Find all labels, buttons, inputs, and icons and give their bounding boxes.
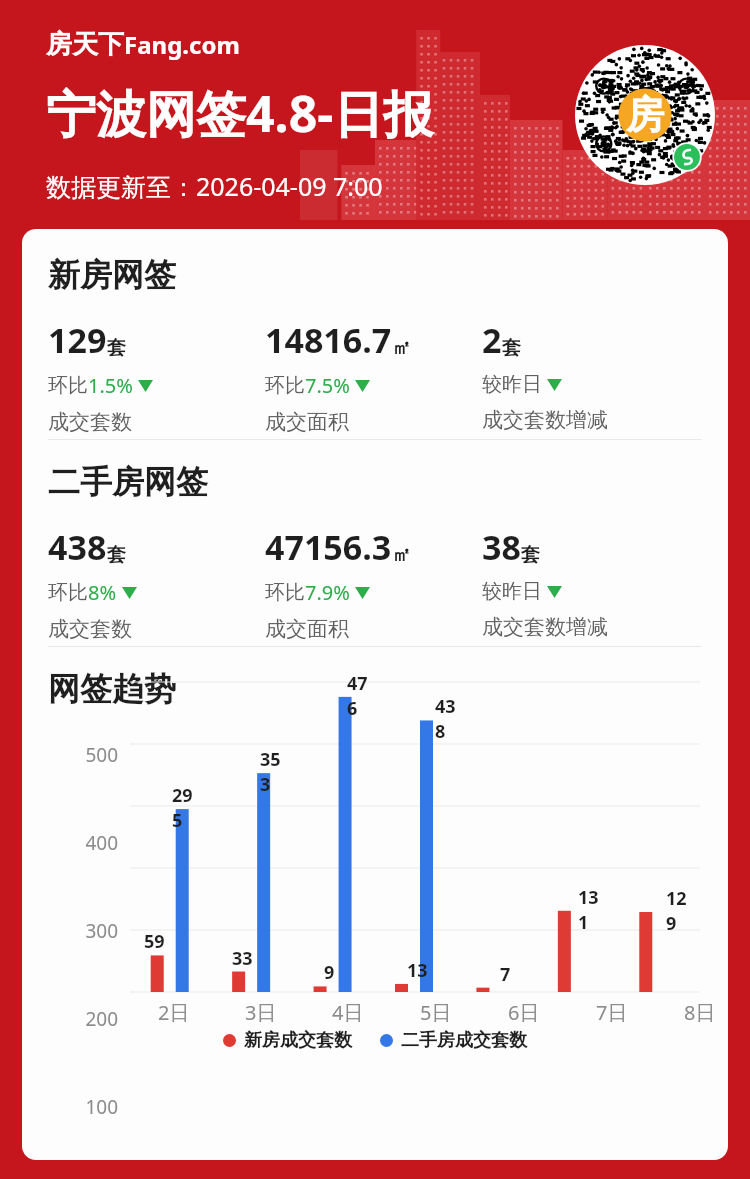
staticText: 7.5% [305, 372, 350, 399]
staticText: 100 [22, 1094, 118, 1120]
staticText: 4日 [332, 999, 364, 1026]
staticText: 38 [482, 524, 521, 570]
staticText: 7日 [596, 999, 628, 1026]
staticText: 13 [407, 958, 428, 983]
staticText: 200 [22, 1006, 118, 1032]
staticText: ㎡ [392, 543, 411, 567]
staticText: 成交套数 [48, 616, 132, 642]
staticText: 成交面积 [265, 616, 349, 642]
staticText: 438 [435, 694, 463, 744]
staticText: 套 [107, 336, 126, 360]
staticText: 129 [48, 317, 107, 363]
staticText: 成交面积 [265, 409, 349, 435]
staticText: 47156.3 [265, 524, 392, 570]
staticText: 成交套数增减 [482, 407, 608, 433]
staticText: 131 [578, 885, 606, 935]
staticText: 网签趋势 [48, 669, 176, 709]
button[interactable]: 扫码关注小程序 [575, 45, 715, 185]
staticText: 295 [172, 783, 200, 833]
staticText: 较昨日 [482, 579, 542, 604]
staticText: 6日 [508, 999, 540, 1026]
staticText: 9 [324, 960, 335, 985]
staticText: 14816.7 [265, 317, 392, 363]
staticText: 2 [482, 317, 502, 363]
staticText: 成交套数 [48, 409, 132, 435]
staticText: 二手房网签 [48, 462, 208, 502]
staticText: 二手房成交套数 [401, 1029, 527, 1052]
staticText: 较昨日 [482, 372, 542, 397]
staticText: 59 [144, 929, 165, 954]
staticText: 7.9% [305, 579, 350, 606]
staticText: 353 [260, 747, 288, 797]
staticText: 套 [521, 543, 540, 567]
staticText: 环比 [265, 373, 305, 398]
staticText: 环比 [48, 373, 88, 398]
staticText: 1.5% [88, 372, 133, 399]
staticText: 成交套数增减 [482, 614, 608, 640]
staticText: 5日 [420, 999, 452, 1026]
staticText: 房 [626, 91, 664, 139]
staticText: 33 [232, 946, 253, 971]
staticText: 新房网签 [48, 255, 176, 295]
staticText: 房天下 [46, 28, 124, 61]
staticText: 3日 [245, 999, 277, 1026]
staticText: 300 [22, 918, 118, 944]
staticText: 129 [666, 886, 694, 936]
staticText: ㎡ [392, 336, 411, 360]
staticText: 套 [107, 543, 126, 567]
staticText: 新房成交套数 [244, 1029, 352, 1052]
staticText: Fang.com [124, 28, 240, 61]
staticText: 500 [22, 742, 118, 768]
staticText: 400 [22, 830, 118, 856]
staticText: 7 [500, 962, 511, 987]
staticText: 8% [88, 579, 117, 606]
staticText: 环比 [48, 580, 88, 605]
staticText: 8日 [684, 999, 716, 1026]
staticText: 438 [48, 524, 107, 570]
staticText: 宁波网签4.8-日报 [46, 79, 434, 147]
staticText: 套 [502, 336, 521, 360]
staticText: 2日 [158, 999, 190, 1026]
staticText: 数据更新至：2026-04-09 7:00 [46, 169, 383, 203]
staticText: 476 [347, 671, 375, 721]
staticText: 环比 [265, 580, 305, 605]
